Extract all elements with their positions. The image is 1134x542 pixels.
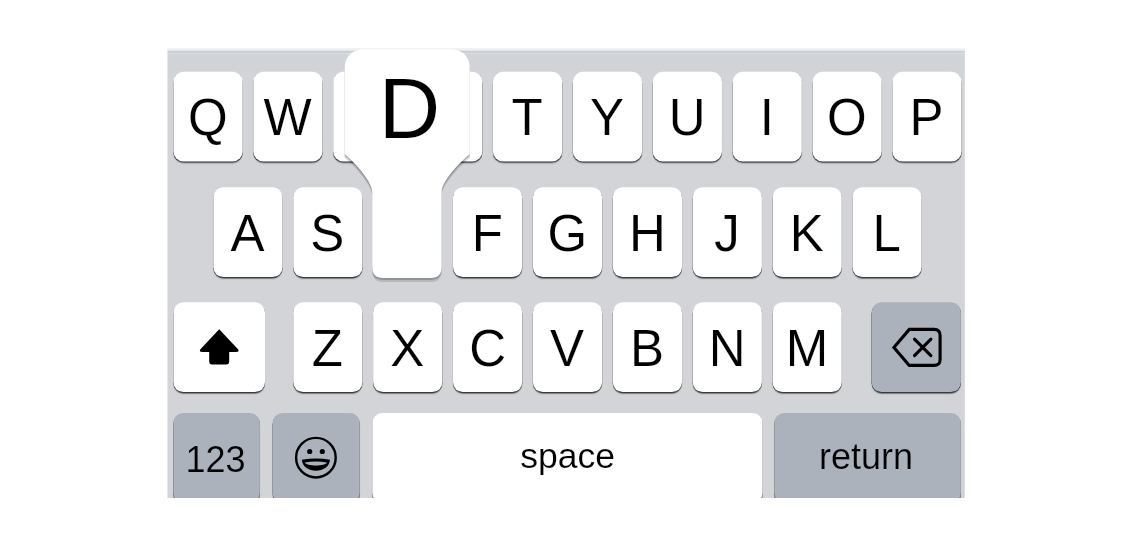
button[interactable] [173,413,260,498]
button[interactable] [774,413,961,498]
button[interactable] [772,302,841,392]
button[interactable] [453,302,522,392]
button[interactable] [773,187,842,277]
button[interactable] [533,187,602,277]
button[interactable] [213,187,282,277]
button[interactable] [693,302,762,392]
button[interactable] [892,72,961,162]
button[interactable] [812,72,881,162]
button[interactable] [493,72,562,162]
button[interactable] [613,302,682,392]
button[interactable]: Shift [173,302,265,392]
button[interactable] [372,413,763,498]
button[interactable] [733,72,802,162]
button[interactable] [852,187,921,277]
button[interactable] [693,187,762,277]
button[interactable] [653,72,722,162]
button[interactable] [293,302,362,392]
button[interactable] [453,187,522,277]
button[interactable] [173,72,242,162]
button[interactable] [613,187,682,277]
button[interactable] [333,72,402,162]
button[interactable] [573,72,642,162]
button[interactable] [533,302,602,392]
button[interactable] [413,72,482,162]
button[interactable] [373,187,442,277]
button[interactable] [253,72,322,162]
button[interactable] [293,187,362,277]
button[interactable]: Backspace [872,302,961,392]
button[interactable]: Emoji keyboard [273,413,360,498]
button[interactable] [373,302,442,392]
